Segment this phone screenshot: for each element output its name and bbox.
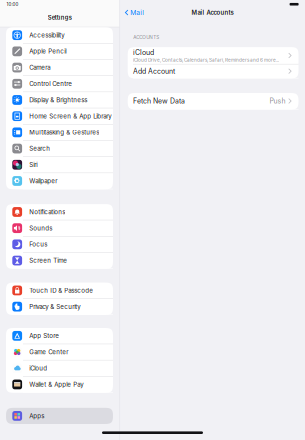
button[interactable]: Screen Time [6, 253, 113, 269]
staticText: Display & Brightness [29, 96, 87, 104]
button[interactable]: Focus [6, 236, 113, 253]
staticText: Game Center [29, 348, 68, 356]
staticText: Siri [29, 161, 37, 168]
button[interactable]: Wallpaper [6, 173, 113, 189]
staticText: iCloud [29, 364, 47, 372]
staticText: Wallpaper [29, 177, 57, 185]
staticText: Control Centre [29, 80, 72, 87]
button[interactable]: Game Center [6, 344, 113, 360]
button[interactable]: Apps [6, 408, 113, 424]
staticText: Mail Accounts [191, 9, 233, 16]
staticText: Notifications [29, 208, 65, 216]
staticText: Touch ID & Passcode [29, 287, 93, 294]
staticText: Settings [48, 14, 72, 21]
staticText: ACCOUNTS [133, 34, 159, 40]
staticText: Apps [29, 412, 44, 420]
staticText: iCloud Drive, Contacts, Calendars, Safar… [133, 57, 279, 63]
staticText: Privacy & Security [29, 303, 80, 310]
staticText: Sounds [29, 224, 52, 232]
staticText: Apple Pencil [29, 48, 66, 55]
staticText: Fetch New Data [133, 97, 185, 105]
staticText: App Store [29, 332, 59, 339]
staticText: 10:00 [7, 1, 19, 7]
staticText: iCloud [133, 48, 154, 57]
staticText: Search [29, 145, 50, 152]
staticText: Mail [130, 8, 144, 17]
staticText: Home Screen & App Library [29, 112, 111, 120]
button[interactable]: App Store [6, 328, 113, 344]
button[interactable]: iCloud [6, 360, 113, 377]
button[interactable]: Accessibility [6, 27, 113, 43]
staticText: Focus [29, 241, 47, 248]
staticText: Multitasking & Gestures [29, 129, 99, 136]
staticText: Screen Time [29, 257, 67, 264]
button[interactable]: Notifications [6, 204, 113, 220]
button[interactable]: Multitasking & Gestures [6, 124, 113, 141]
button[interactable]: iCloud [128, 47, 298, 64]
button[interactable]: Control Centre [6, 76, 113, 92]
staticText: Accessibility [29, 31, 64, 39]
staticText: Camera [29, 64, 50, 71]
staticText: Add Account [133, 67, 175, 75]
button[interactable]: Display & Brightness [6, 92, 113, 108]
button[interactable]: Fetch New Data [128, 93, 298, 109]
button[interactable]: Siri [6, 157, 113, 173]
staticText: Wallet & Apple Pay [29, 381, 83, 388]
staticText: Push [269, 97, 285, 105]
button[interactable]: Mail [125, 8, 144, 17]
button[interactable]: Camera [6, 60, 113, 76]
button[interactable]: Apple Pencil [6, 43, 113, 60]
button[interactable]: Wallet & Apple Pay [6, 377, 113, 393]
button[interactable]: Touch ID & Passcode [6, 283, 113, 299]
button[interactable]: Privacy & Security [6, 299, 113, 315]
button[interactable]: Search [6, 141, 113, 157]
button[interactable]: Add Account [128, 64, 298, 78]
button[interactable]: Home Screen & App Library [6, 108, 113, 124]
button[interactable]: Sounds [6, 220, 113, 236]
